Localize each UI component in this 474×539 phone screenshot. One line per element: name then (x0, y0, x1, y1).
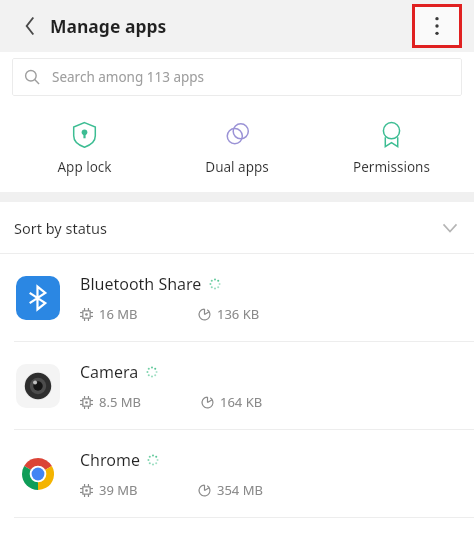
staticText: 136 KB (217, 305, 260, 323)
button[interactable]: Permissions (321, 119, 461, 176)
staticText: Dual apps (205, 158, 269, 176)
button[interactable]: Chrome (0, 430, 474, 517)
button[interactable]: Back (10, 6, 50, 46)
staticText: Sort by status (14, 218, 107, 238)
button[interactable]: Dual apps (167, 119, 307, 176)
staticText: Search among 113 apps (52, 68, 205, 86)
staticText: App lock (57, 158, 112, 176)
staticText: 164 KB (220, 393, 263, 411)
button[interactable]: More options (412, 4, 462, 48)
button[interactable]: Sort by status (0, 202, 474, 253)
staticText: Manage apps (50, 14, 167, 38)
button[interactable]: Camera (0, 342, 474, 429)
staticText: 354 MB (217, 481, 263, 499)
staticText: Permissions (353, 158, 430, 176)
button[interactable]: App lock (14, 119, 154, 176)
staticText: Chrome (80, 449, 140, 471)
staticText: 8.5 MB (99, 393, 141, 411)
button[interactable]: Search among 113 apps (12, 58, 462, 96)
staticText: Bluetooth Share (80, 273, 202, 295)
button[interactable]: Bluetooth Share (0, 254, 474, 341)
staticText: 16 MB (99, 305, 138, 323)
staticText: Camera (80, 361, 139, 383)
staticText: 39 MB (99, 481, 138, 499)
